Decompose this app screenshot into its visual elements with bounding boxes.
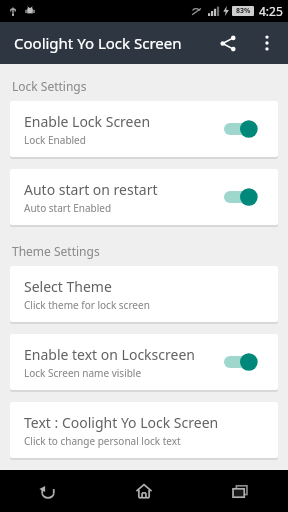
staticText: Text : Coolight Yo Lock Screen	[24, 413, 219, 432]
staticText: Click to change personal lock text	[24, 434, 181, 448]
staticText: Enable Lock Screen	[24, 112, 151, 131]
staticText: Lock Settings	[12, 78, 87, 94]
staticText: Lock Screen name visible	[24, 366, 142, 380]
button[interactable]: Toggle	[224, 184, 264, 210]
button[interactable]: Toggle	[224, 116, 264, 142]
button[interactable]: Enable text on Lockscreen	[10, 334, 278, 390]
staticText: 4:25	[259, 3, 283, 19]
button[interactable]: Recent apps	[192, 470, 288, 512]
button[interactable]: Toggle	[224, 349, 264, 375]
button[interactable]: Home	[96, 470, 192, 512]
button[interactable]: More options	[248, 24, 286, 62]
button[interactable]: Auto start on restart	[10, 169, 278, 225]
button[interactable]: Select Theme	[10, 266, 278, 322]
staticText: Theme Settings	[12, 243, 100, 259]
button[interactable]: Back	[0, 470, 96, 512]
staticText: Click theme for lock screen	[24, 298, 150, 312]
staticText: Enable text on Lockscreen	[24, 345, 195, 364]
button[interactable]: Enable Lock Screen	[10, 101, 278, 157]
staticText: Auto start on restart	[24, 180, 158, 199]
staticText: Auto start Enabled	[24, 201, 112, 215]
staticText: Coolight Yo Lock Screen	[14, 33, 182, 53]
staticText: Lock Enabled	[24, 133, 86, 147]
button[interactable]: Text : Coolight Yo Lock Screen	[10, 402, 278, 458]
staticText: Select Theme	[24, 277, 112, 296]
button[interactable]: Share	[208, 23, 248, 63]
staticText: 83%	[236, 6, 251, 16]
